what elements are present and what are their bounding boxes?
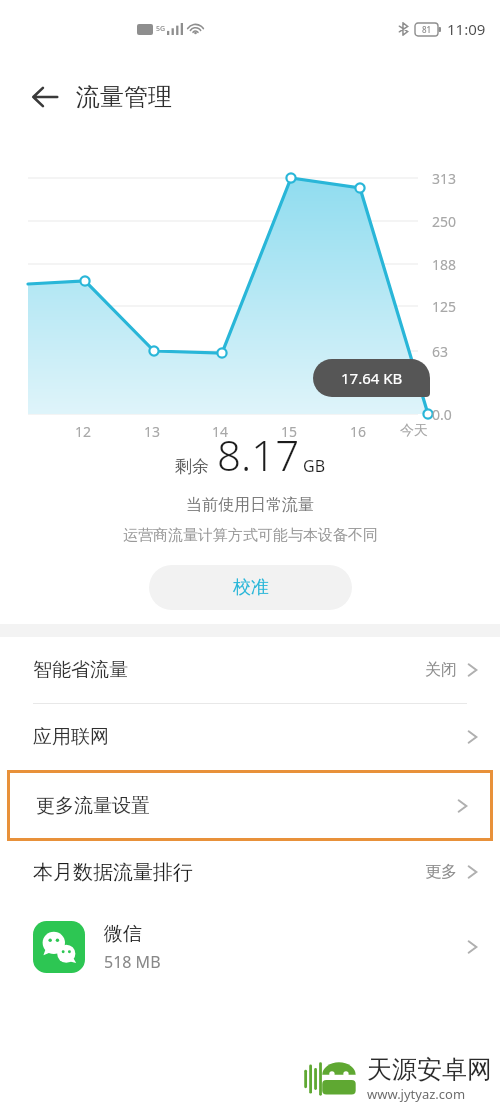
button[interactable]: 微信 — [33, 903, 478, 991]
staticText: 17.64 KB — [341, 368, 403, 388]
staticText: GB — [303, 455, 326, 477]
button[interactable]: 校准 — [149, 565, 352, 610]
staticText: 13 — [144, 422, 161, 441]
button[interactable]: Back — [22, 74, 68, 120]
staticText: 16 — [350, 422, 367, 441]
button[interactable]: 应用联网 — [0, 704, 500, 770]
staticText: 更多 — [425, 862, 457, 882]
staticText: 11:09 — [447, 19, 486, 39]
staticText: 应用联网 — [33, 725, 109, 749]
staticText: 运营商流量计算方式可能与本设备不同 — [123, 526, 378, 545]
staticText: 今天 — [400, 422, 428, 440]
staticText: 188 — [432, 255, 457, 274]
button[interactable]: 本月数据流量排行 — [33, 841, 478, 903]
staticText: 15 — [281, 422, 298, 441]
staticText: 14 — [212, 422, 229, 441]
staticText: 本月数据流量排行 — [33, 860, 193, 885]
staticText: 校准 — [233, 576, 269, 599]
button[interactable]: 更多流量设置 — [10, 773, 490, 838]
staticText: 流量管理 — [76, 82, 172, 112]
staticText: 63 — [432, 342, 449, 361]
staticText: www.jytyaz.com — [367, 1085, 466, 1103]
staticText: 12 — [75, 422, 92, 441]
staticText: 智能省流量 — [33, 658, 128, 682]
staticText: 518 MB — [104, 951, 161, 973]
staticText: 关闭 — [425, 660, 457, 680]
staticText: 剩余 — [175, 456, 209, 477]
staticText: 0.0 — [432, 405, 452, 424]
staticText: 5G — [156, 24, 166, 34]
staticText: 更多流量设置 — [36, 794, 150, 818]
staticText: 天源安卓网 — [367, 1054, 492, 1085]
staticText: 81 — [422, 24, 432, 35]
staticText: 当前使用日常流量 — [186, 495, 314, 515]
staticText: 125 — [432, 297, 457, 316]
staticText: 250 — [432, 212, 457, 231]
staticText: 313 — [432, 169, 457, 188]
staticText: 8.17 — [217, 426, 300, 483]
staticText: 微信 — [104, 922, 142, 946]
button[interactable]: 智能省流量 — [0, 637, 500, 704]
